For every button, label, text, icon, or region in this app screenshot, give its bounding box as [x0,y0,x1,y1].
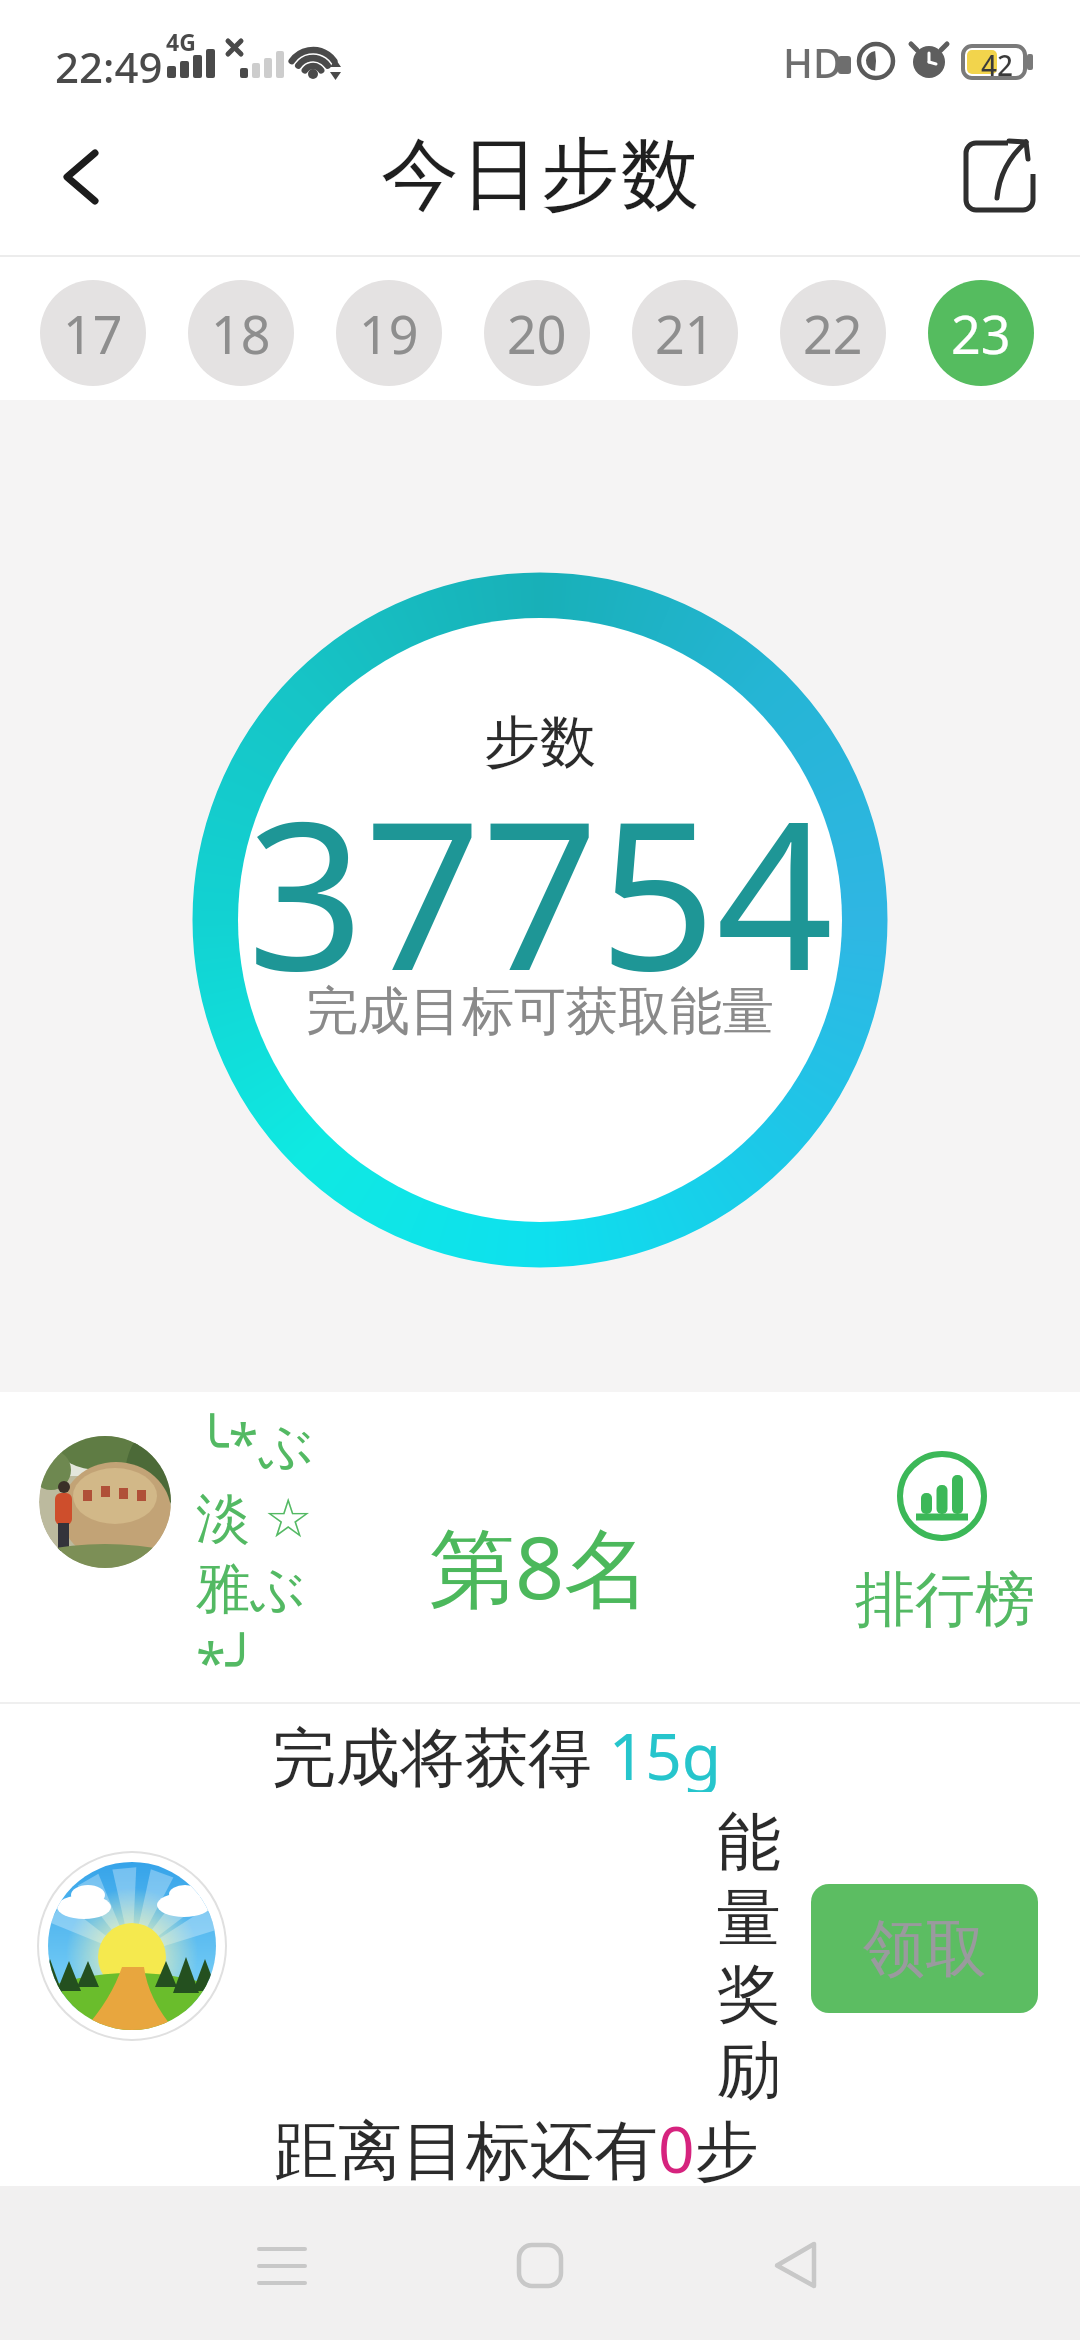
button[interactable]: 19 [336,280,442,386]
staticText: 完成将获得 15g [272,1712,722,1792]
staticText: 4G [166,26,196,57]
button[interactable] [950,130,1050,226]
staticText: 步数 [484,707,596,778]
staticText: 20 [507,298,567,369]
staticText: 18 [211,298,271,369]
button[interactable]: 17 [40,280,146,386]
button[interactable]: 23 [928,280,1034,386]
staticText: 励 [717,2030,781,2106]
button[interactable] [39,1436,171,1568]
button[interactable]: 领取 [811,1884,1038,2013]
staticText: 淡 ☆ [196,1479,313,1552]
staticText: 第8名 [429,1507,651,1624]
staticText: 17 [63,298,123,369]
staticText: 19 [359,298,419,369]
staticText: 排行榜 [855,1562,1035,1638]
staticText: 能 [717,1802,781,1878]
staticText: ╰*ぶ [196,1406,314,1479]
staticText: 23 [951,298,1011,369]
button[interactable] [490,2215,590,2315]
staticText: 雅ぶ [196,1555,306,1623]
staticText: 21 [655,298,715,369]
staticText: 距离目标还有0步 [274,2105,759,2185]
button[interactable] [30,130,130,230]
button[interactable]: 21 [632,280,738,386]
button[interactable] [232,2215,332,2315]
staticText: HD [783,35,843,89]
staticText: 今日步数 [380,126,700,224]
button[interactable] [745,2215,845,2315]
staticText: 奖 [717,1954,781,2030]
button[interactable]: 排行榜 [850,1430,1040,1660]
staticText: 量 [717,1878,781,1954]
button[interactable]: 18 [188,280,294,386]
staticText: 42 [981,46,1014,84]
staticText: 37754 [247,751,834,1030]
staticText: 22:49 [55,38,163,95]
staticText: 完成目标可获取能量 [306,979,774,1045]
button[interactable]: 20 [484,280,590,386]
staticText: 领取 [863,1910,987,1988]
button[interactable]: 22 [780,280,886,386]
staticText: 22 [803,298,863,369]
staticText: *╯ [196,1625,259,1698]
